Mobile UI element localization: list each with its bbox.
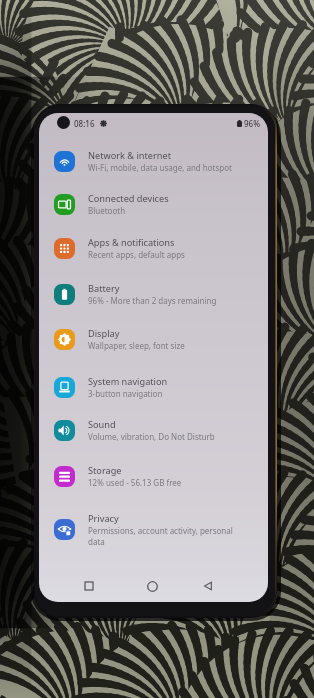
staticText: data <box>88 536 105 546</box>
staticText: 08:16 <box>74 118 95 129</box>
button[interactable]: Apps & notifications <box>39 231 268 265</box>
staticText: Privacy <box>88 512 119 525</box>
staticText: 96% - More than 2 days remaining <box>88 295 217 306</box>
staticText: Bluetooth <box>88 205 126 216</box>
button[interactable]: Storage <box>39 459 268 493</box>
button[interactable]: Battery <box>39 277 268 311</box>
button[interactable]: Home <box>140 574 164 598</box>
staticText: 96% <box>244 118 260 129</box>
button[interactable]: Privacy <box>39 512 268 546</box>
button[interactable]: Sound <box>39 413 268 447</box>
staticText: Connected devices <box>88 192 169 205</box>
staticText: Battery <box>88 282 120 295</box>
button[interactable]: Back <box>197 575 219 597</box>
button[interactable]: Recent apps <box>78 575 100 597</box>
button[interactable]: Display <box>39 322 268 356</box>
staticText: Sound <box>88 418 116 431</box>
staticText: 3-button navigation <box>88 388 163 399</box>
staticText: Storage <box>88 464 122 477</box>
staticText: Permissions, account activity, personal <box>88 525 233 536</box>
button[interactable]: Network & internet <box>39 144 268 178</box>
staticText: Apps & notifications <box>88 236 175 249</box>
staticText: System navigation <box>88 375 168 388</box>
button[interactable]: Connected devices <box>39 187 268 221</box>
staticText: 12% used - 56.13 GB free <box>88 477 182 488</box>
staticText: Wi-Fi, mobile, data usage, and hotspot <box>88 162 232 173</box>
staticText: Display <box>88 327 120 340</box>
staticText: Volume, vibration, Do Not Disturb <box>88 431 215 442</box>
staticText: Recent apps, default apps <box>88 249 185 260</box>
button[interactable]: System navigation <box>39 370 268 404</box>
staticText: Wallpaper, sleep, font size <box>88 340 185 351</box>
staticText: Network & internet <box>88 149 171 162</box>
